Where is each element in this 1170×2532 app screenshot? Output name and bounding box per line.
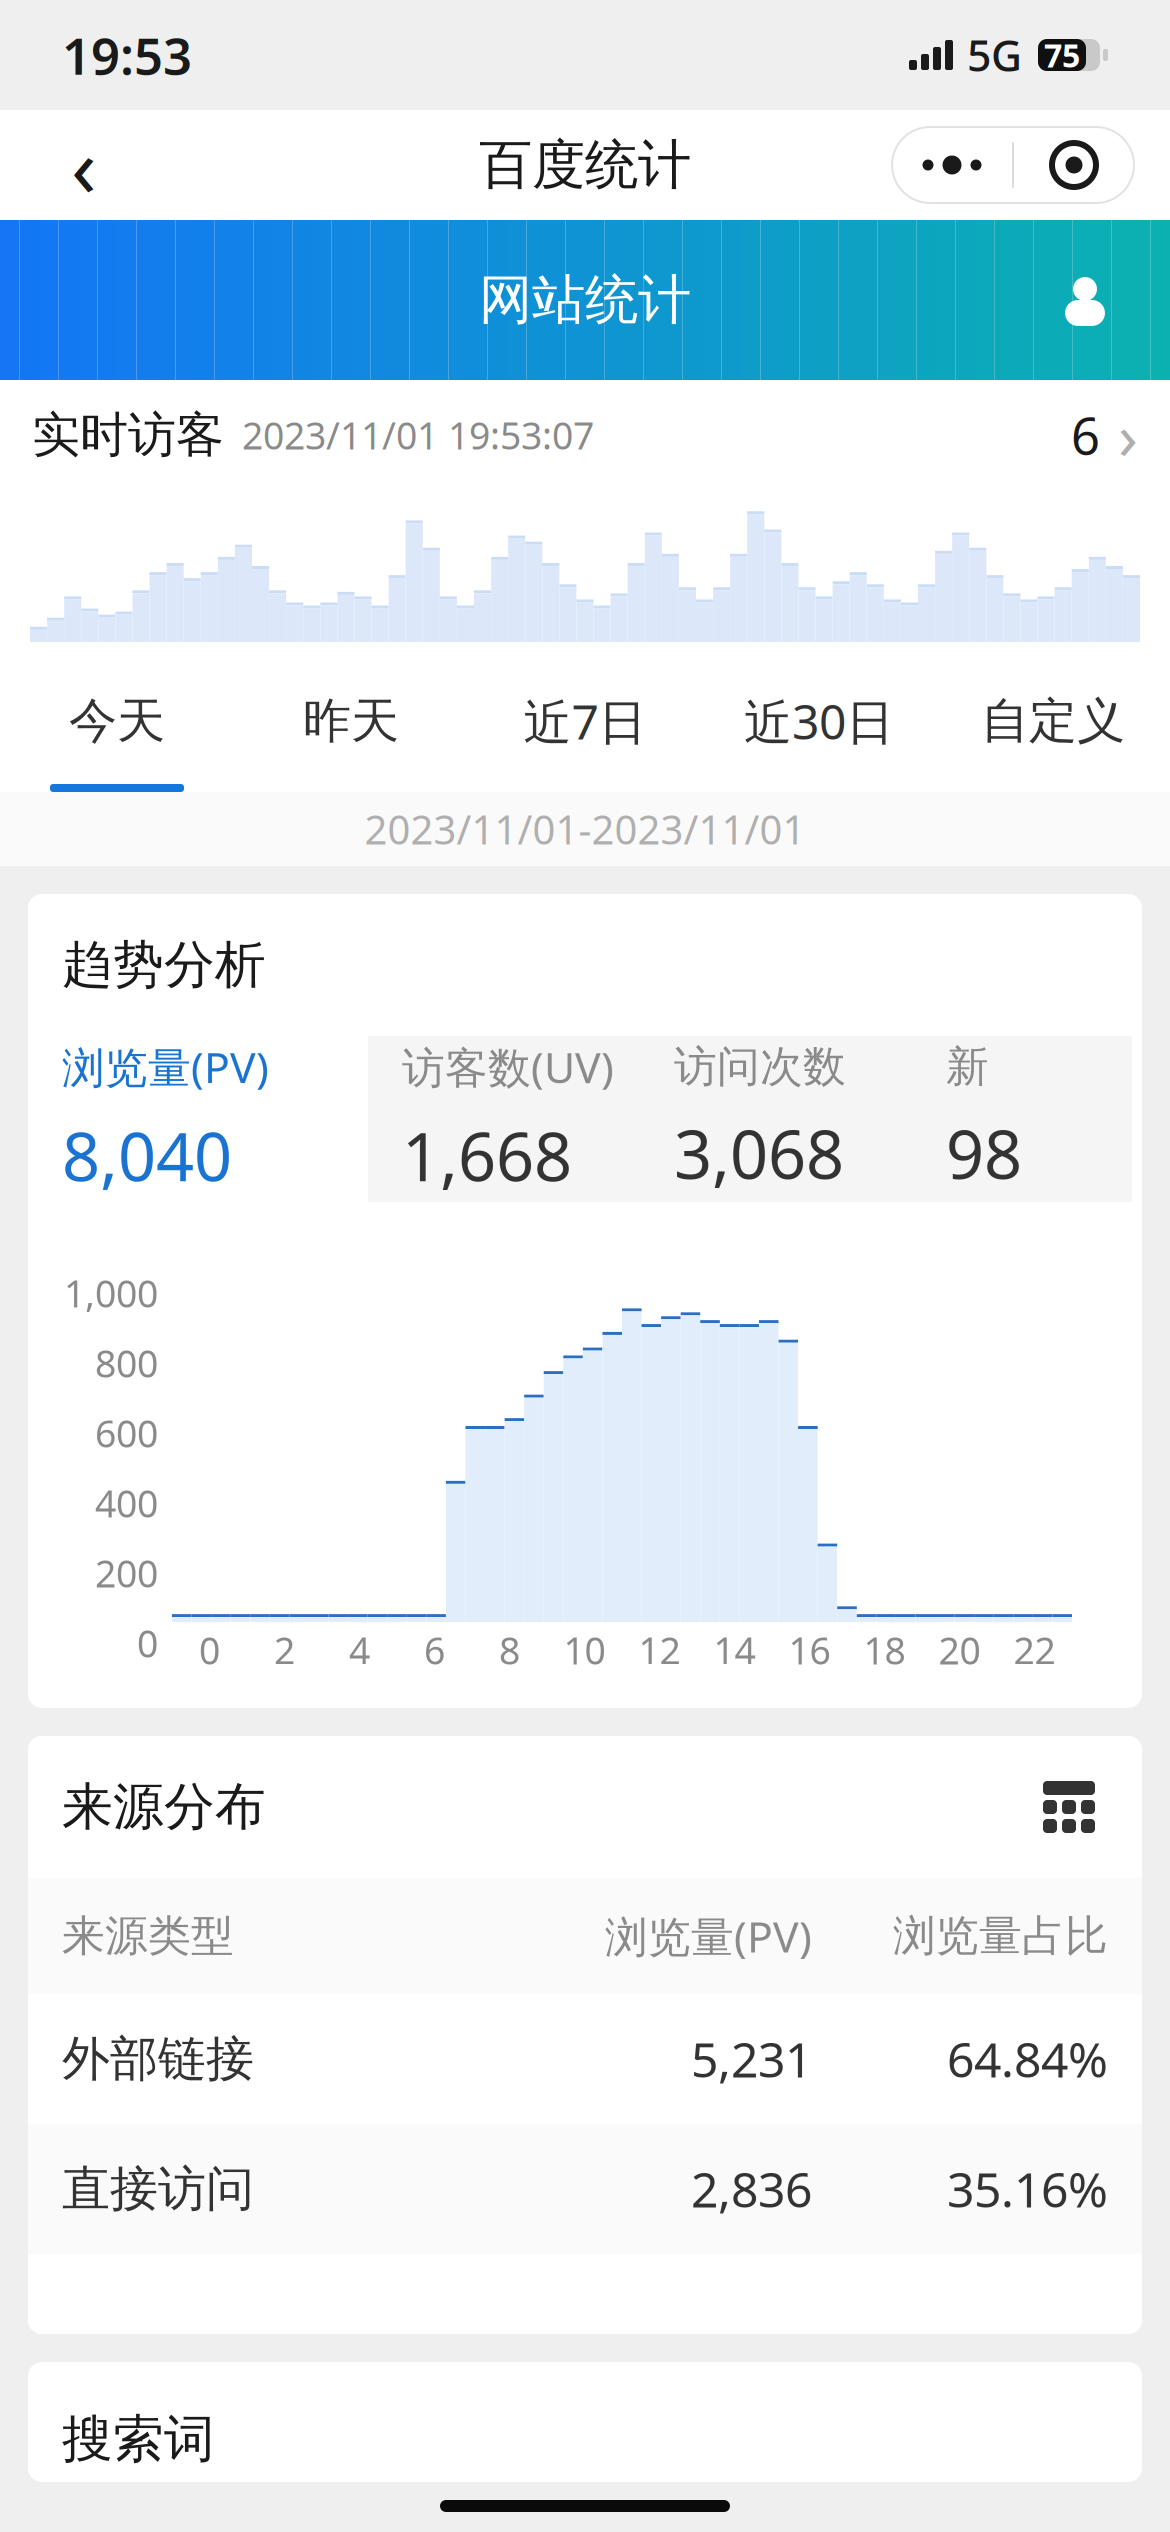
staticText: 1,668 — [402, 1111, 572, 1200]
staticText: 趋势分析 — [62, 934, 266, 996]
staticText: 200 — [95, 1548, 158, 1598]
staticText: 2,836 — [691, 2157, 812, 2221]
staticText: 800 — [95, 1338, 158, 1388]
staticText: 64.84% — [947, 2027, 1108, 2091]
staticText: 20 — [938, 1625, 980, 1675]
button[interactable]: More options — [892, 127, 1134, 203]
staticText: 自定义 — [981, 691, 1125, 750]
staticText: 8 — [499, 1625, 520, 1675]
button[interactable]: 访客数(UV) — [368, 1036, 640, 1202]
staticText: 浏览量(PV) — [605, 1908, 812, 1964]
staticText: 新 — [946, 1040, 989, 1093]
button[interactable]: 今天 — [0, 658, 234, 792]
staticText: 14 — [713, 1625, 755, 1675]
staticText: › — [1118, 392, 1138, 477]
staticText: 近30日 — [744, 689, 894, 753]
staticText: 2023/11/01 19:53:07 — [242, 410, 594, 460]
staticText: 浏览量占比 — [893, 1910, 1108, 1962]
staticText: 近7日 — [523, 689, 646, 753]
staticText: 600 — [95, 1408, 158, 1458]
button[interactable]: 浏览量(PV) — [28, 1036, 368, 1202]
staticText: 8,040 — [62, 1111, 232, 1200]
button[interactable]: Back — [36, 120, 132, 210]
staticText: 昨天 — [303, 691, 399, 750]
staticText: 5,231 — [691, 2027, 812, 2091]
staticText: 5G — [967, 27, 1022, 83]
button[interactable]: 近30日 — [702, 658, 936, 792]
button[interactable]: 访问次数 — [640, 1036, 912, 1202]
staticText: 98 — [946, 1109, 1022, 1197]
staticText: 来源类型 — [62, 1910, 234, 1962]
staticText: 6 — [424, 1625, 445, 1675]
button[interactable]: 新 — [912, 1036, 1132, 1202]
staticText: 3,068 — [674, 1109, 844, 1197]
staticText: 访问次数 — [674, 1040, 846, 1093]
staticText: 0 — [199, 1625, 220, 1675]
staticText: 网站统计 — [479, 267, 691, 333]
staticText: 16 — [788, 1625, 830, 1675]
staticText: 搜索词 — [62, 2408, 215, 2470]
button[interactable]: 昨天 — [234, 658, 468, 792]
staticText: 2023/11/01-2023/11/01 — [364, 802, 805, 855]
staticText: 75 — [1044, 34, 1080, 76]
staticText: 浏览量(PV) — [62, 1038, 269, 1095]
staticText: 35.16% — [947, 2157, 1108, 2221]
staticText: 4 — [349, 1625, 370, 1675]
staticText: 22 — [1013, 1625, 1055, 1675]
staticText: 0 — [137, 1618, 158, 1668]
staticText: 19:53 — [62, 21, 192, 89]
staticText: 400 — [95, 1478, 158, 1528]
staticText: 外部链接 — [62, 2029, 254, 2088]
staticText: 12 — [638, 1625, 680, 1675]
staticText: 直接访问 — [62, 2159, 254, 2218]
button[interactable]: Account — [1040, 255, 1130, 345]
staticText: 10 — [563, 1625, 605, 1675]
staticText: 1,000 — [64, 1268, 158, 1318]
button[interactable]: Switch view — [1030, 1768, 1108, 1846]
staticText: 2 — [274, 1625, 295, 1675]
staticText: 今天 — [69, 691, 165, 750]
staticText: 访客数(UV) — [402, 1038, 614, 1095]
button[interactable]: 实时访客 — [0, 380, 1170, 490]
button[interactable]: 自定义 — [936, 658, 1170, 792]
staticText: 来源分布 — [62, 1776, 266, 1838]
staticText: 百度统计 — [479, 132, 691, 198]
staticText: ‹ — [71, 110, 97, 220]
button[interactable]: 近7日 — [468, 658, 702, 792]
staticText: 18 — [863, 1625, 905, 1675]
staticText: 实时访客 — [32, 405, 224, 464]
staticText: 6 — [1071, 401, 1100, 469]
